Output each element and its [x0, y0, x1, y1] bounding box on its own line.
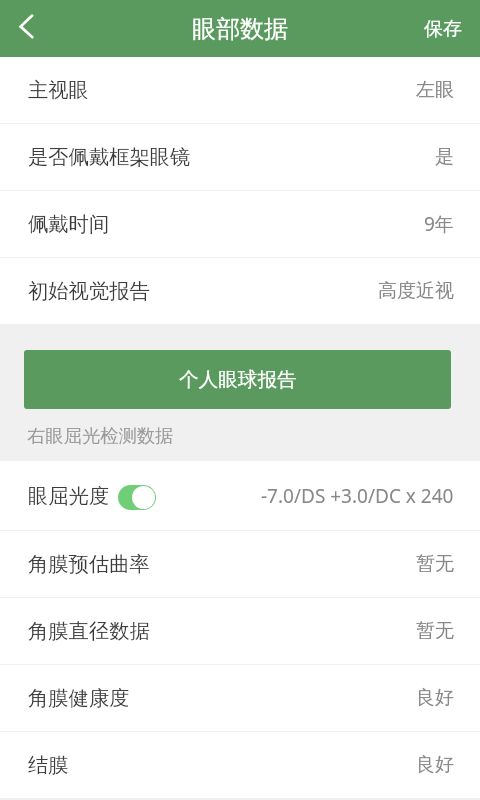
button[interactable]: 角膜健康度	[0, 665, 480, 732]
button[interactable]: 角膜直径数据	[0, 598, 480, 665]
staticText: 结膜	[28, 752, 69, 778]
button[interactable]: 主视眼	[0, 57, 480, 124]
staticText: -7.0/DS +3.0/DC x 240	[261, 483, 454, 509]
staticText: 佩戴时间	[28, 211, 110, 237]
staticText: 初始视觉报告	[28, 278, 150, 304]
button[interactable]: Back	[0, 0, 52, 57]
staticText: 个人眼球报告	[179, 367, 297, 392]
staticText: 高度近视	[378, 279, 454, 303]
button[interactable]: 保存	[408, 0, 480, 57]
button[interactable]: 个人眼球报告	[24, 350, 451, 409]
staticText: 9年	[424, 211, 454, 237]
staticText: 左眼	[416, 78, 454, 102]
staticText: 角膜健康度	[28, 685, 130, 711]
staticText: 角膜预估曲率	[28, 551, 150, 577]
button[interactable]: Refraction toggle, on	[118, 485, 156, 510]
staticText: 良好	[416, 686, 454, 710]
button[interactable]: 角膜预估曲率	[0, 531, 480, 598]
staticText: 良好	[416, 753, 454, 777]
button[interactable]: 佩戴时间	[0, 191, 480, 258]
button[interactable]: 结膜	[0, 732, 480, 799]
staticText: 主视眼	[28, 77, 89, 103]
staticText: 眼部数据	[192, 14, 288, 44]
staticText: 保存	[424, 17, 462, 41]
button[interactable]: 是否佩戴框架眼镜	[0, 124, 480, 191]
staticText: 暂无	[416, 619, 454, 643]
button[interactable]: 初始视觉报告	[0, 258, 480, 324]
staticText: 角膜直径数据	[28, 618, 150, 644]
staticText: 眼屈光度	[28, 483, 110, 509]
staticText: 是否佩戴框架眼镜	[28, 144, 191, 170]
staticText: 暂无	[416, 552, 454, 576]
button[interactable]: 眼屈光度	[0, 461, 480, 531]
staticText: 是	[435, 145, 454, 169]
staticText: 右眼屈光检测数据	[27, 424, 174, 447]
